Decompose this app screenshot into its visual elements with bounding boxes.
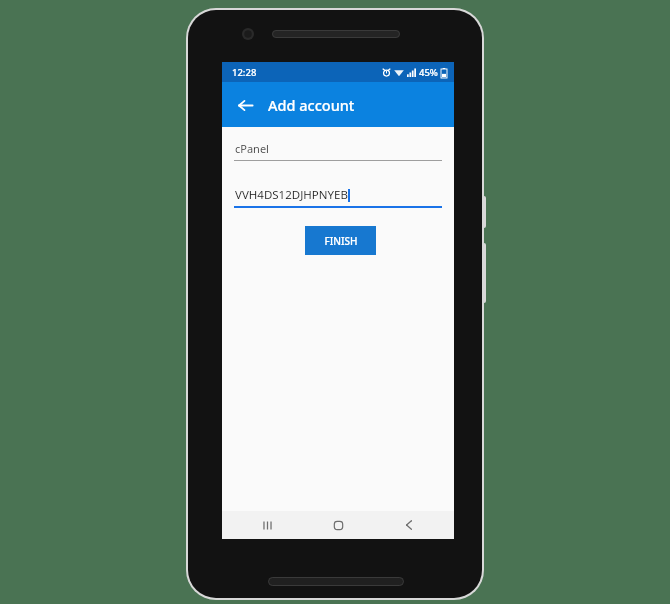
button[interactable]: Back — [383, 511, 435, 539]
button[interactable]: cPanel — [234, 141, 442, 161]
staticText: cPanel — [235, 141, 269, 156]
button[interactable]: FINISH — [305, 226, 376, 255]
staticText: VVH4DS12DJHPNYEB — [235, 187, 348, 203]
staticText: FINISH — [324, 234, 358, 248]
staticText: 12:28 — [232, 66, 257, 79]
button[interactable]: Back — [228, 88, 262, 122]
button[interactable]: Home — [312, 511, 364, 539]
staticText: 45% — [419, 66, 438, 79]
button[interactable]: VVH4DS12DJHPNYEB — [234, 187, 442, 208]
staticText: Add account — [268, 95, 355, 115]
button[interactable]: Recent apps — [241, 511, 293, 539]
